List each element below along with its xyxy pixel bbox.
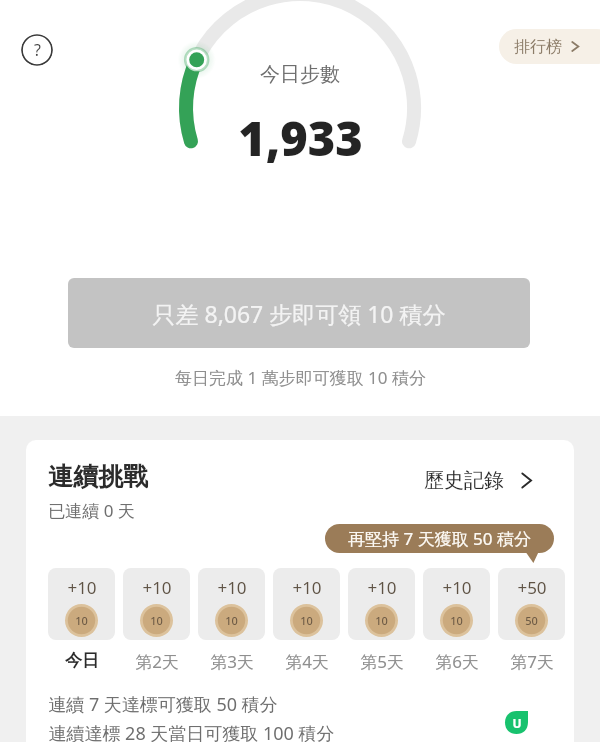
staticText: 連續達標 28 天當日可獲取 100 積分: [48, 721, 335, 742]
button[interactable]: +10: [423, 568, 490, 673]
button[interactable]: 排行榜: [499, 29, 600, 64]
staticText: +10: [217, 576, 247, 599]
staticText: 連續挑戰: [48, 461, 148, 492]
staticText: 歷史記錄: [424, 468, 504, 493]
staticText: 10: [150, 613, 163, 628]
staticText: 每日完成 1 萬步即可獲取 10 積分: [175, 366, 426, 389]
staticText: 今日: [65, 650, 99, 671]
button[interactable]: +50: [498, 568, 565, 673]
staticText: 今日步數: [260, 62, 340, 87]
staticText: 連續 7 天達標可獲取 50 積分: [48, 692, 278, 717]
button[interactable]: +10: [348, 568, 415, 673]
staticText: 第3天: [210, 650, 254, 673]
staticText: U: [512, 715, 522, 731]
staticText: 10: [300, 613, 313, 628]
staticText: 第5天: [360, 650, 404, 673]
staticText: 排行榜: [514, 37, 562, 57]
staticText: 第2天: [135, 650, 179, 673]
button[interactable]: +10: [48, 568, 115, 671]
staticText: 50: [525, 613, 538, 628]
staticText: +10: [67, 576, 97, 599]
staticText: 10: [375, 613, 388, 628]
staticText: +10: [442, 576, 472, 599]
staticText: ?: [34, 39, 41, 61]
staticText: 第6天: [435, 650, 479, 673]
staticText: 再堅持 7 天獲取 50 積分: [348, 527, 531, 550]
staticText: +10: [367, 576, 397, 599]
staticText: 第4天: [285, 650, 329, 673]
staticText: +10: [292, 576, 322, 599]
staticText: 10: [450, 613, 463, 628]
button[interactable]: +10: [198, 568, 265, 673]
staticText: +10: [142, 576, 172, 599]
staticText: +50: [517, 576, 547, 599]
button[interactable]: 再堅持 7 天獲取 50 積分: [325, 524, 554, 553]
staticText: 已連續 0 天: [48, 499, 135, 522]
staticText: 只差 8,067 步即可領 10 積分: [152, 298, 446, 329]
button[interactable]: Help: [21, 34, 53, 66]
button[interactable]: +10: [273, 568, 340, 673]
button[interactable]: 歷史記錄: [424, 462, 536, 498]
button[interactable]: +10: [123, 568, 190, 673]
staticText: 1,933: [238, 106, 363, 170]
staticText: 第7天: [510, 650, 554, 673]
button[interactable]: 只差 8,067 步即可領 10 積分: [68, 278, 530, 348]
staticText: 10: [225, 613, 238, 628]
staticText: 10: [75, 613, 88, 628]
